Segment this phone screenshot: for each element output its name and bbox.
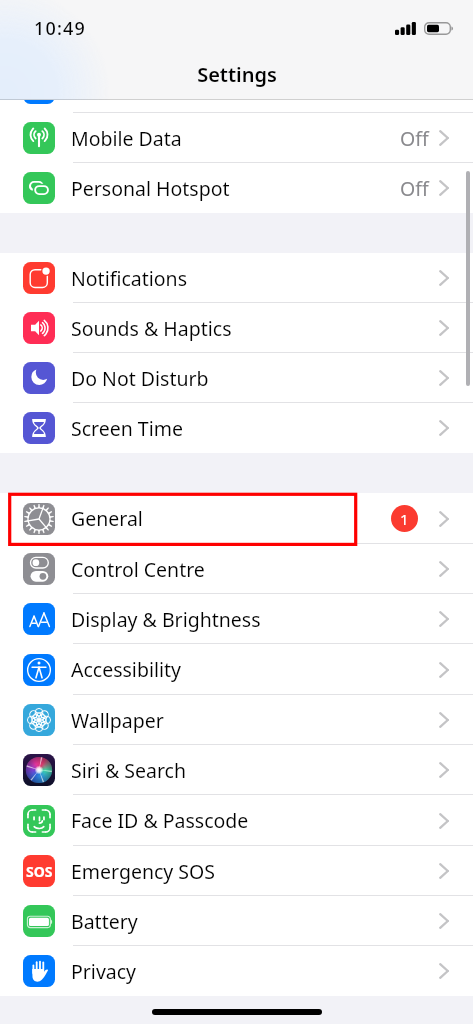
- staticText: Screen Time: [71, 415, 183, 442]
- button[interactable]: Do Not Disturb: [0, 353, 473, 403]
- staticText: Display & Brightness: [71, 606, 261, 633]
- button[interactable]: Sounds & Haptics: [0, 303, 473, 353]
- staticText: Wi-Fi: [71, 75, 116, 102]
- staticText: Siri & Search: [71, 757, 186, 784]
- button[interactable]: Notifications: [0, 253, 473, 303]
- button[interactable]: SOS: [0, 846, 473, 896]
- button[interactable]: Siri & Search: [0, 745, 473, 795]
- button[interactable]: Personal Hotspot: [0, 163, 473, 213]
- staticText: Wallpaper: [71, 707, 164, 734]
- button[interactable]: Screen Time: [0, 403, 473, 453]
- button[interactable]: Mobile Data: [0, 113, 473, 163]
- staticText: 1: [400, 509, 409, 529]
- button[interactable]: Battery: [0, 896, 473, 946]
- staticText: Mobile Data: [71, 125, 182, 152]
- staticText: Control Centre: [71, 556, 205, 583]
- staticText: Accessibility: [71, 656, 181, 683]
- staticText: Off: [400, 175, 429, 202]
- button[interactable]: General: [0, 493, 473, 544]
- staticText: Do Not Disturb: [71, 365, 209, 392]
- staticText: Notifications: [71, 265, 187, 292]
- staticText: Off: [400, 125, 429, 152]
- staticText: Battery: [71, 908, 138, 935]
- staticText: Off: [400, 75, 429, 102]
- button[interactable]: Wallpaper: [0, 695, 473, 745]
- staticText: Privacy: [71, 958, 137, 985]
- staticText: Face ID & Passcode: [71, 807, 249, 834]
- button[interactable]: Accessibility: [0, 644, 473, 695]
- staticText: 10:49: [34, 16, 87, 41]
- staticText: Personal Hotspot: [71, 175, 230, 202]
- staticText: Emergency SOS: [71, 858, 215, 885]
- staticText: SOS: [26, 862, 53, 881]
- button[interactable]: Control Centre: [0, 544, 473, 594]
- staticText: Sounds & Haptics: [71, 315, 232, 342]
- button[interactable]: Privacy: [0, 946, 473, 996]
- button[interactable]: Face ID & Passcode: [0, 795, 473, 846]
- staticText: Settings: [197, 61, 277, 88]
- button[interactable]: Wi-Fi: [0, 63, 473, 113]
- button[interactable]: Display & Brightness: [0, 594, 473, 644]
- staticText: General: [71, 505, 143, 532]
